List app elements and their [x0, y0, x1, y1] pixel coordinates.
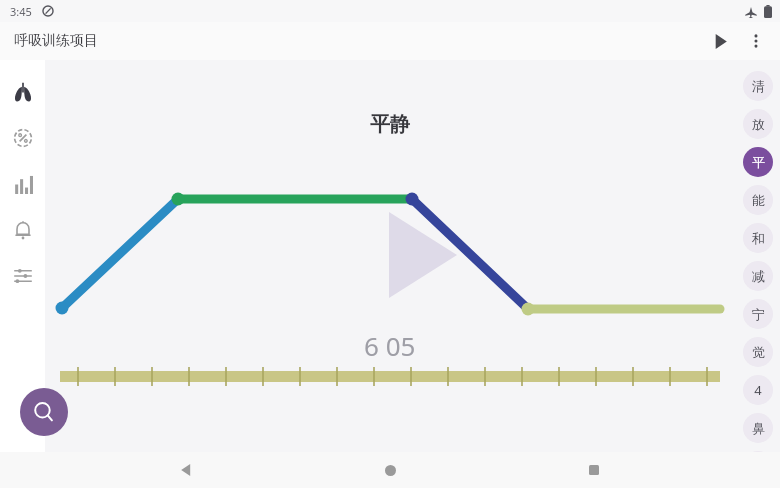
button[interactable]: More options: [738, 23, 774, 59]
button[interactable]: Back: [168, 452, 204, 488]
button[interactable]: Home: [372, 452, 408, 488]
staticText: 鼻: [752, 420, 765, 436]
button[interactable]: Reminders: [7, 214, 39, 246]
button[interactable]: Search: [20, 388, 68, 436]
button[interactable]: 减: [743, 261, 773, 291]
staticText: 和: [752, 230, 765, 246]
button[interactable]: Recent apps: [576, 452, 612, 488]
button[interactable]: 4: [743, 375, 773, 405]
button[interactable]: Play: [702, 23, 738, 59]
staticText: 清: [752, 78, 765, 94]
button[interactable]: 清: [743, 71, 773, 101]
staticText: 能: [752, 192, 765, 208]
staticText: 平: [752, 154, 765, 170]
staticText: 觉: [752, 344, 765, 360]
button[interactable]: Statistics: [7, 168, 39, 200]
button[interactable]: 和: [743, 223, 773, 253]
staticText: 3:45: [10, 4, 32, 19]
button[interactable]: 觉: [743, 337, 773, 367]
staticText: 减: [752, 268, 765, 284]
button[interactable]: 能: [743, 185, 773, 215]
staticText: 呼吸训练项目: [14, 32, 98, 50]
staticText: 平静: [370, 112, 410, 137]
staticText: 放: [752, 116, 765, 132]
button[interactable]: 放: [743, 109, 773, 139]
button[interactable]: 鼻: [743, 413, 773, 443]
button[interactable]: 平: [743, 147, 773, 177]
button[interactable]: Progress: [7, 122, 39, 154]
button[interactable]: Settings: [7, 260, 39, 292]
staticText: 宁: [752, 306, 765, 322]
staticText: 6 05: [364, 328, 416, 363]
staticText: 4: [754, 381, 762, 399]
button[interactable]: Lungs: [7, 76, 39, 108]
button[interactable]: 宁: [743, 299, 773, 329]
